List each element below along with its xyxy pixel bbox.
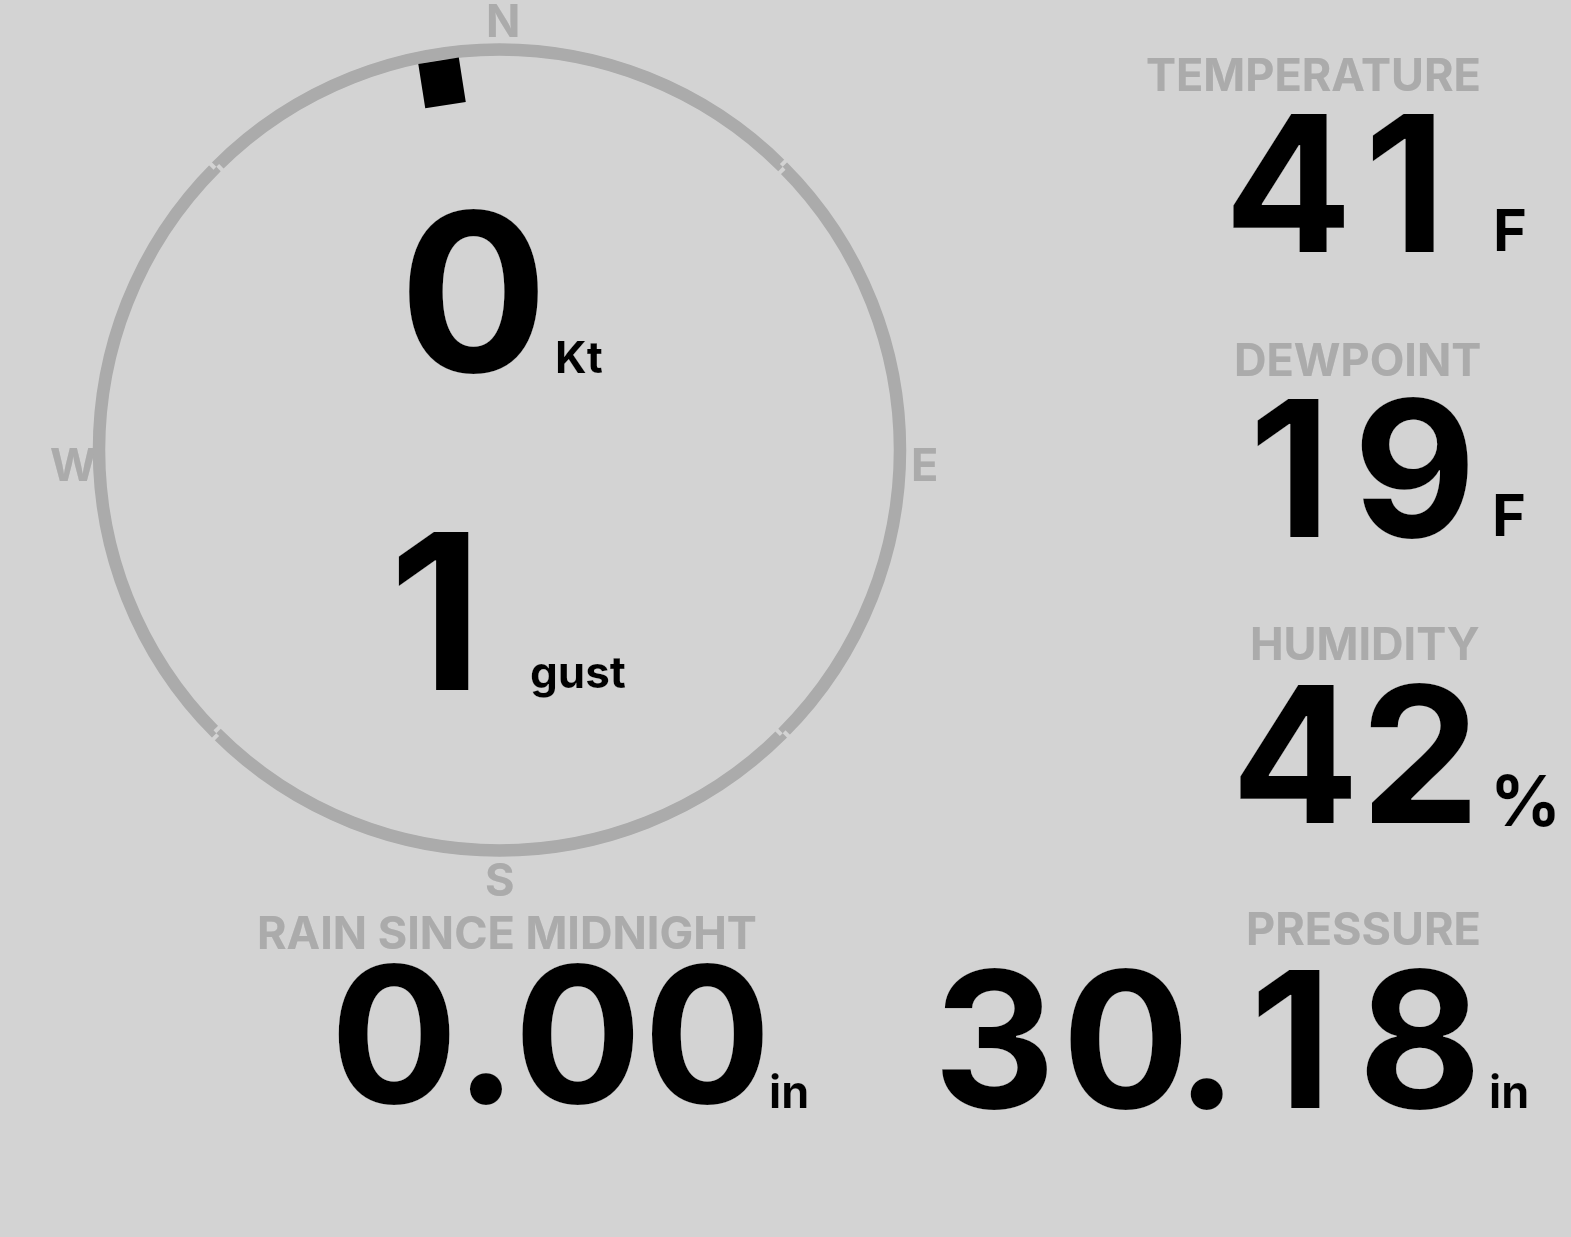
button[interactable]: Temperature 41 F: [1140, 40, 1560, 270]
staticText: %: [1490, 758, 1562, 843]
staticText: F: [1492, 480, 1527, 550]
staticText: 18: [1250, 924, 1508, 1154]
staticText: DEWPOINT: [1234, 332, 1482, 386]
staticText: 41: [1224, 68, 1466, 298]
staticText: HUMIDITY: [1250, 616, 1480, 670]
staticText: in: [1489, 1064, 1530, 1118]
staticText: 42: [1231, 639, 1482, 869]
staticText: S: [485, 852, 515, 906]
staticText: 0.00: [330, 919, 774, 1149]
staticText: PRESSURE: [1246, 901, 1481, 955]
staticText: N: [486, 0, 521, 47]
staticText: 19: [1249, 353, 1499, 583]
staticText: RAIN SINCE MIDNIGHT: [257, 905, 757, 959]
staticText: F: [1493, 195, 1528, 265]
staticText: Kt: [555, 330, 603, 383]
staticText: W: [50, 437, 97, 491]
button[interactable]: Humidity 42 percent: [1140, 610, 1560, 840]
staticText: TEMPERATURE: [1146, 47, 1481, 101]
staticText: gust: [530, 645, 626, 698]
staticText: 0: [399, 158, 549, 425]
button[interactable]: Rain since midnight 0.00 in: [250, 895, 850, 1125]
staticText: E: [911, 437, 939, 491]
button[interactable]: Pressure 30.18 in: [925, 895, 1560, 1125]
staticText: .: [1175, 924, 1239, 1154]
staticText: 30: [933, 924, 1196, 1154]
button[interactable]: Dewpoint 19 F: [1140, 325, 1560, 555]
staticText: 1: [389, 480, 483, 743]
button[interactable]: Wind direction and speed: [80, 30, 920, 870]
staticText: in: [769, 1064, 810, 1118]
